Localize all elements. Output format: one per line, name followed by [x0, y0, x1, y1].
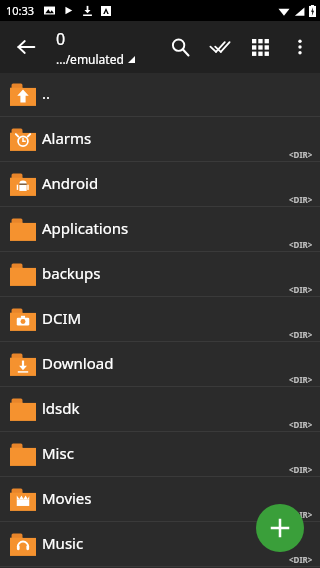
button[interactable]: ldsdk: [0, 387, 320, 432]
button[interactable]: Add: [256, 504, 304, 552]
button[interactable]: More options: [280, 27, 320, 67]
button[interactable]: Movies: [0, 477, 320, 522]
staticText: <DIR>: [289, 329, 313, 340]
button[interactable]: Android: [0, 162, 320, 207]
staticText: <DIR>: [289, 194, 313, 205]
button[interactable]: Grid view: [240, 27, 280, 67]
staticText: ..: [42, 83, 51, 103]
staticText: <DIR>: [289, 374, 313, 385]
button[interactable]: Music: [0, 522, 320, 567]
button[interactable]: Alarms: [0, 117, 320, 162]
button[interactable]: ..: [0, 73, 320, 117]
staticText: backups: [42, 263, 101, 283]
button[interactable]: Search: [160, 27, 200, 67]
button[interactable]: backups: [0, 252, 320, 297]
staticText: Android: [42, 173, 99, 193]
button[interactable]: Applications: [0, 207, 320, 252]
staticText: .../emulated: [56, 51, 124, 67]
staticText: <DIR>: [289, 239, 313, 250]
staticText: <DIR>: [289, 464, 313, 475]
staticText: Movies: [42, 488, 92, 508]
staticText: Download: [42, 353, 114, 373]
staticText: Misc: [42, 443, 74, 463]
staticText: Applications: [42, 218, 129, 238]
staticText: <DIR>: [289, 509, 313, 520]
button[interactable]: Select all: [200, 27, 240, 67]
staticText: <DIR>: [289, 554, 313, 565]
staticText: <DIR>: [289, 149, 313, 160]
staticText: Music: [42, 533, 84, 553]
button[interactable]: Misc: [0, 432, 320, 477]
button[interactable]: DCIM: [0, 297, 320, 342]
staticText: ldsdk: [42, 398, 80, 418]
staticText: DCIM: [42, 308, 82, 328]
button[interactable]: 0: [56, 28, 135, 67]
staticText: Alarms: [42, 128, 92, 148]
staticText: 10:33: [6, 3, 35, 18]
staticText: <DIR>: [289, 419, 313, 430]
staticText: 0: [56, 28, 66, 50]
staticText: <DIR>: [289, 284, 313, 295]
button[interactable]: Download: [0, 342, 320, 387]
button[interactable]: Back: [6, 27, 46, 67]
